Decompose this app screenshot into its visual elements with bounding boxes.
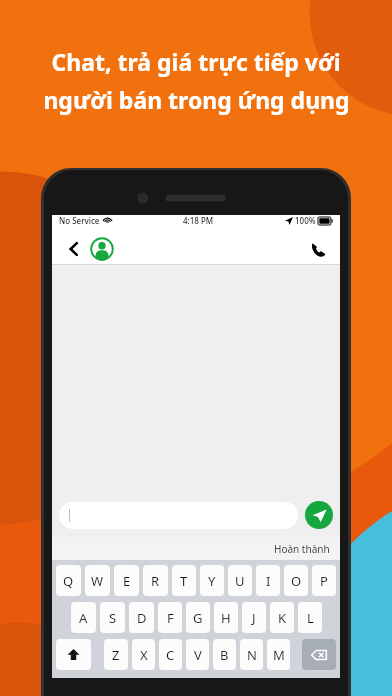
button[interactable]: I bbox=[256, 565, 280, 596]
button[interactable]: T bbox=[172, 565, 196, 596]
staticText: P bbox=[320, 572, 328, 590]
button[interactable]: P bbox=[312, 565, 336, 596]
staticText: R bbox=[151, 572, 160, 590]
staticText: Y bbox=[208, 572, 216, 590]
button[interactable]: M bbox=[267, 639, 290, 670]
button[interactable]: H bbox=[214, 602, 238, 633]
staticText: W bbox=[91, 572, 104, 590]
button[interactable] bbox=[59, 502, 298, 529]
button[interactable]: Z bbox=[104, 639, 128, 670]
staticText: T bbox=[180, 572, 188, 590]
button[interactable]: D bbox=[129, 602, 154, 633]
button[interactable]: J bbox=[242, 602, 266, 633]
staticText: L bbox=[307, 609, 314, 627]
staticText: M bbox=[273, 646, 285, 664]
button[interactable]: Q bbox=[56, 565, 81, 596]
button[interactable]: Call bbox=[305, 236, 331, 262]
staticText: O bbox=[291, 572, 302, 590]
staticText: C bbox=[166, 646, 175, 664]
staticText: S bbox=[109, 609, 117, 627]
staticText: No Service bbox=[59, 215, 100, 226]
staticText: D bbox=[137, 609, 147, 627]
button[interactable]: O bbox=[284, 565, 308, 596]
button[interactable]: R bbox=[143, 565, 168, 596]
staticText: 100% bbox=[295, 215, 316, 226]
button[interactable]: Hoàn thành bbox=[264, 539, 340, 559]
staticText: I bbox=[266, 572, 271, 590]
button[interactable]: N bbox=[240, 639, 263, 670]
button[interactable]: Y bbox=[200, 565, 224, 596]
button[interactable]: Backspace bbox=[302, 639, 336, 670]
button[interactable]: Send bbox=[305, 501, 333, 529]
button[interactable]: W bbox=[85, 565, 110, 596]
staticText: K bbox=[278, 609, 287, 627]
button[interactable]: X bbox=[132, 639, 155, 670]
staticText: X bbox=[140, 646, 148, 664]
staticText: H bbox=[221, 609, 231, 627]
staticText: N bbox=[247, 646, 257, 664]
staticText: A bbox=[79, 609, 88, 627]
button[interactable]: U bbox=[228, 565, 252, 596]
button[interactable]: E bbox=[114, 565, 139, 596]
staticText: Q bbox=[63, 572, 74, 590]
staticText: người bán trong ứng dụng bbox=[43, 84, 350, 115]
staticText: B bbox=[220, 646, 229, 664]
staticText: Z bbox=[112, 646, 120, 664]
staticText: U bbox=[235, 572, 245, 590]
button[interactable]: G bbox=[186, 602, 210, 633]
button[interactable]: A bbox=[71, 602, 96, 633]
button[interactable]: F bbox=[158, 602, 182, 633]
button[interactable]: K bbox=[270, 602, 294, 633]
staticText: Hoàn thành bbox=[274, 542, 330, 556]
button[interactable]: Back bbox=[61, 236, 87, 262]
button[interactable]: S bbox=[100, 602, 125, 633]
staticText: 4:18 PM bbox=[183, 215, 214, 226]
staticText: Chat, trả giá trực tiếp với bbox=[51, 46, 341, 77]
button[interactable]: V bbox=[186, 639, 209, 670]
button[interactable]: C bbox=[159, 639, 182, 670]
button[interactable]: B bbox=[213, 639, 236, 670]
staticText: J bbox=[252, 609, 256, 627]
staticText: F bbox=[167, 609, 174, 627]
button[interactable]: Shift bbox=[56, 639, 91, 670]
staticText: V bbox=[194, 646, 202, 664]
button[interactable]: L bbox=[298, 602, 322, 633]
staticText: G bbox=[193, 609, 203, 627]
staticText: E bbox=[123, 572, 131, 590]
button[interactable]: Profile bbox=[90, 237, 114, 261]
